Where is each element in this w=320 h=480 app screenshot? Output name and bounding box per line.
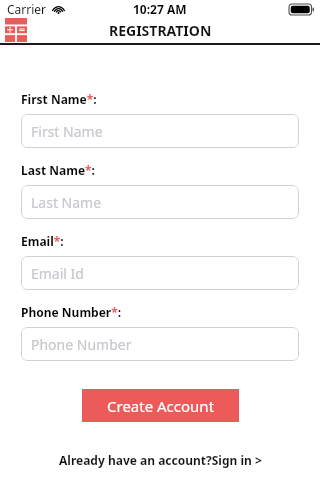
button[interactable]: Already have an account?Sign in > [53,448,268,472]
staticText: Email*: [21,233,64,249]
button[interactable]: Phone Number [21,327,299,361]
staticText: Phone Number*: [21,304,122,320]
staticText: 10:27 AM [133,1,187,17]
staticText: First Name*: [21,91,97,107]
staticText: Create Account [107,396,215,416]
staticText: Last Name*: [21,162,95,178]
button[interactable]: Create Account [82,389,239,422]
staticText: REGISTRATION [109,21,212,40]
button[interactable]: Email Id [21,256,299,290]
button[interactable]: Last Name [21,185,299,219]
staticText: Carrier [7,1,47,17]
staticText: Last Name [31,193,102,212]
staticText: Phone Number [31,335,132,354]
staticText: Email Id [31,264,84,283]
staticText: Already have an account?Sign in > [59,452,262,468]
button[interactable]: First Name [21,114,299,148]
staticText: First Name [31,122,103,141]
